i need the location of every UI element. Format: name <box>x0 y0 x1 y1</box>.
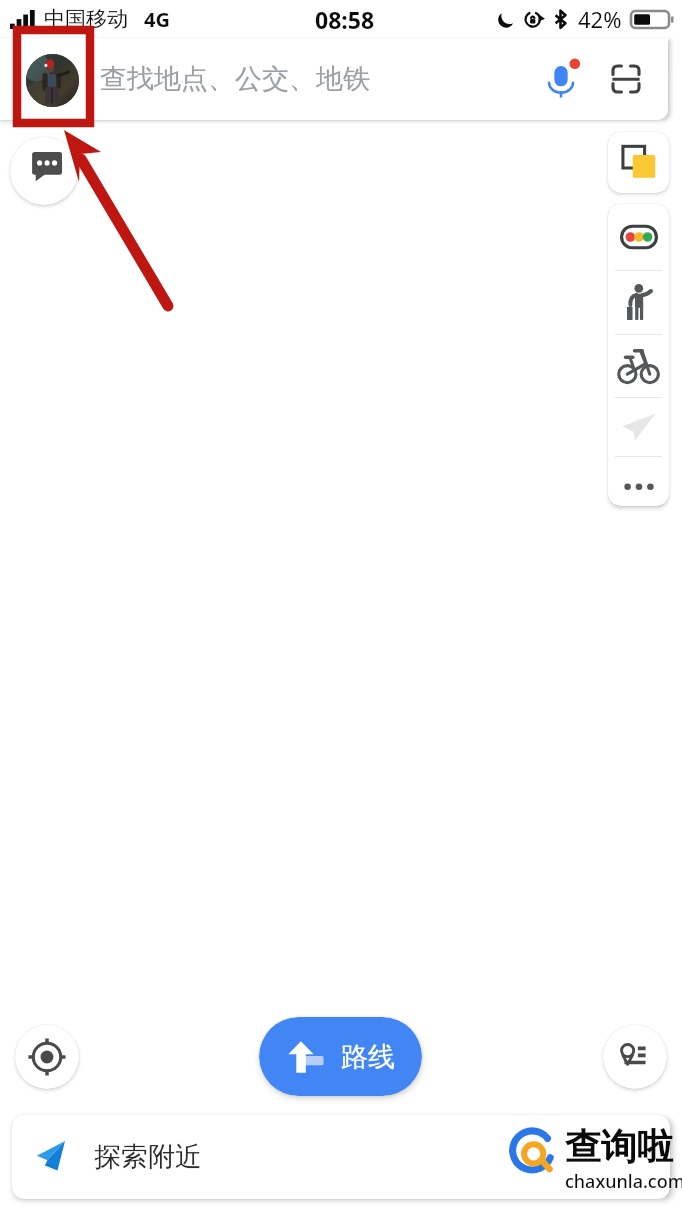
button[interactable]: 探索附近 <box>12 1115 670 1199</box>
button[interactable]: Navigate <box>608 398 669 456</box>
staticText: 中国移动 <box>44 6 128 32</box>
button[interactable]: Profile <box>26 54 79 107</box>
staticText: 查找地点、公交、地铁 <box>100 62 370 96</box>
button[interactable]: My location <box>15 1025 79 1089</box>
button[interactable]: 路线 <box>259 1017 422 1096</box>
button[interactable]: Transit directions <box>608 271 669 334</box>
button[interactable]: Scan code <box>606 59 646 99</box>
button[interactable]: Bicycling <box>608 335 669 397</box>
staticText: 路线 <box>341 1040 395 1074</box>
button[interactable]: Voice search <box>538 56 584 102</box>
staticText: 查询啦 <box>565 1124 673 1169</box>
button[interactable]: 查找地点、公交、地铁 <box>0 38 668 120</box>
staticText: 42% <box>578 4 622 34</box>
button[interactable]: More options <box>608 457 669 506</box>
staticText: chaxunla.com <box>565 1169 682 1194</box>
button[interactable]: Map layers <box>608 132 669 193</box>
staticText: 4G <box>144 6 170 33</box>
staticText: 08:58 <box>315 4 375 35</box>
button[interactable]: Saved places <box>603 1025 667 1089</box>
button[interactable]: Messages <box>10 137 78 205</box>
button[interactable]: Traffic <box>608 204 669 270</box>
staticText: 探索附近 <box>94 1140 202 1174</box>
